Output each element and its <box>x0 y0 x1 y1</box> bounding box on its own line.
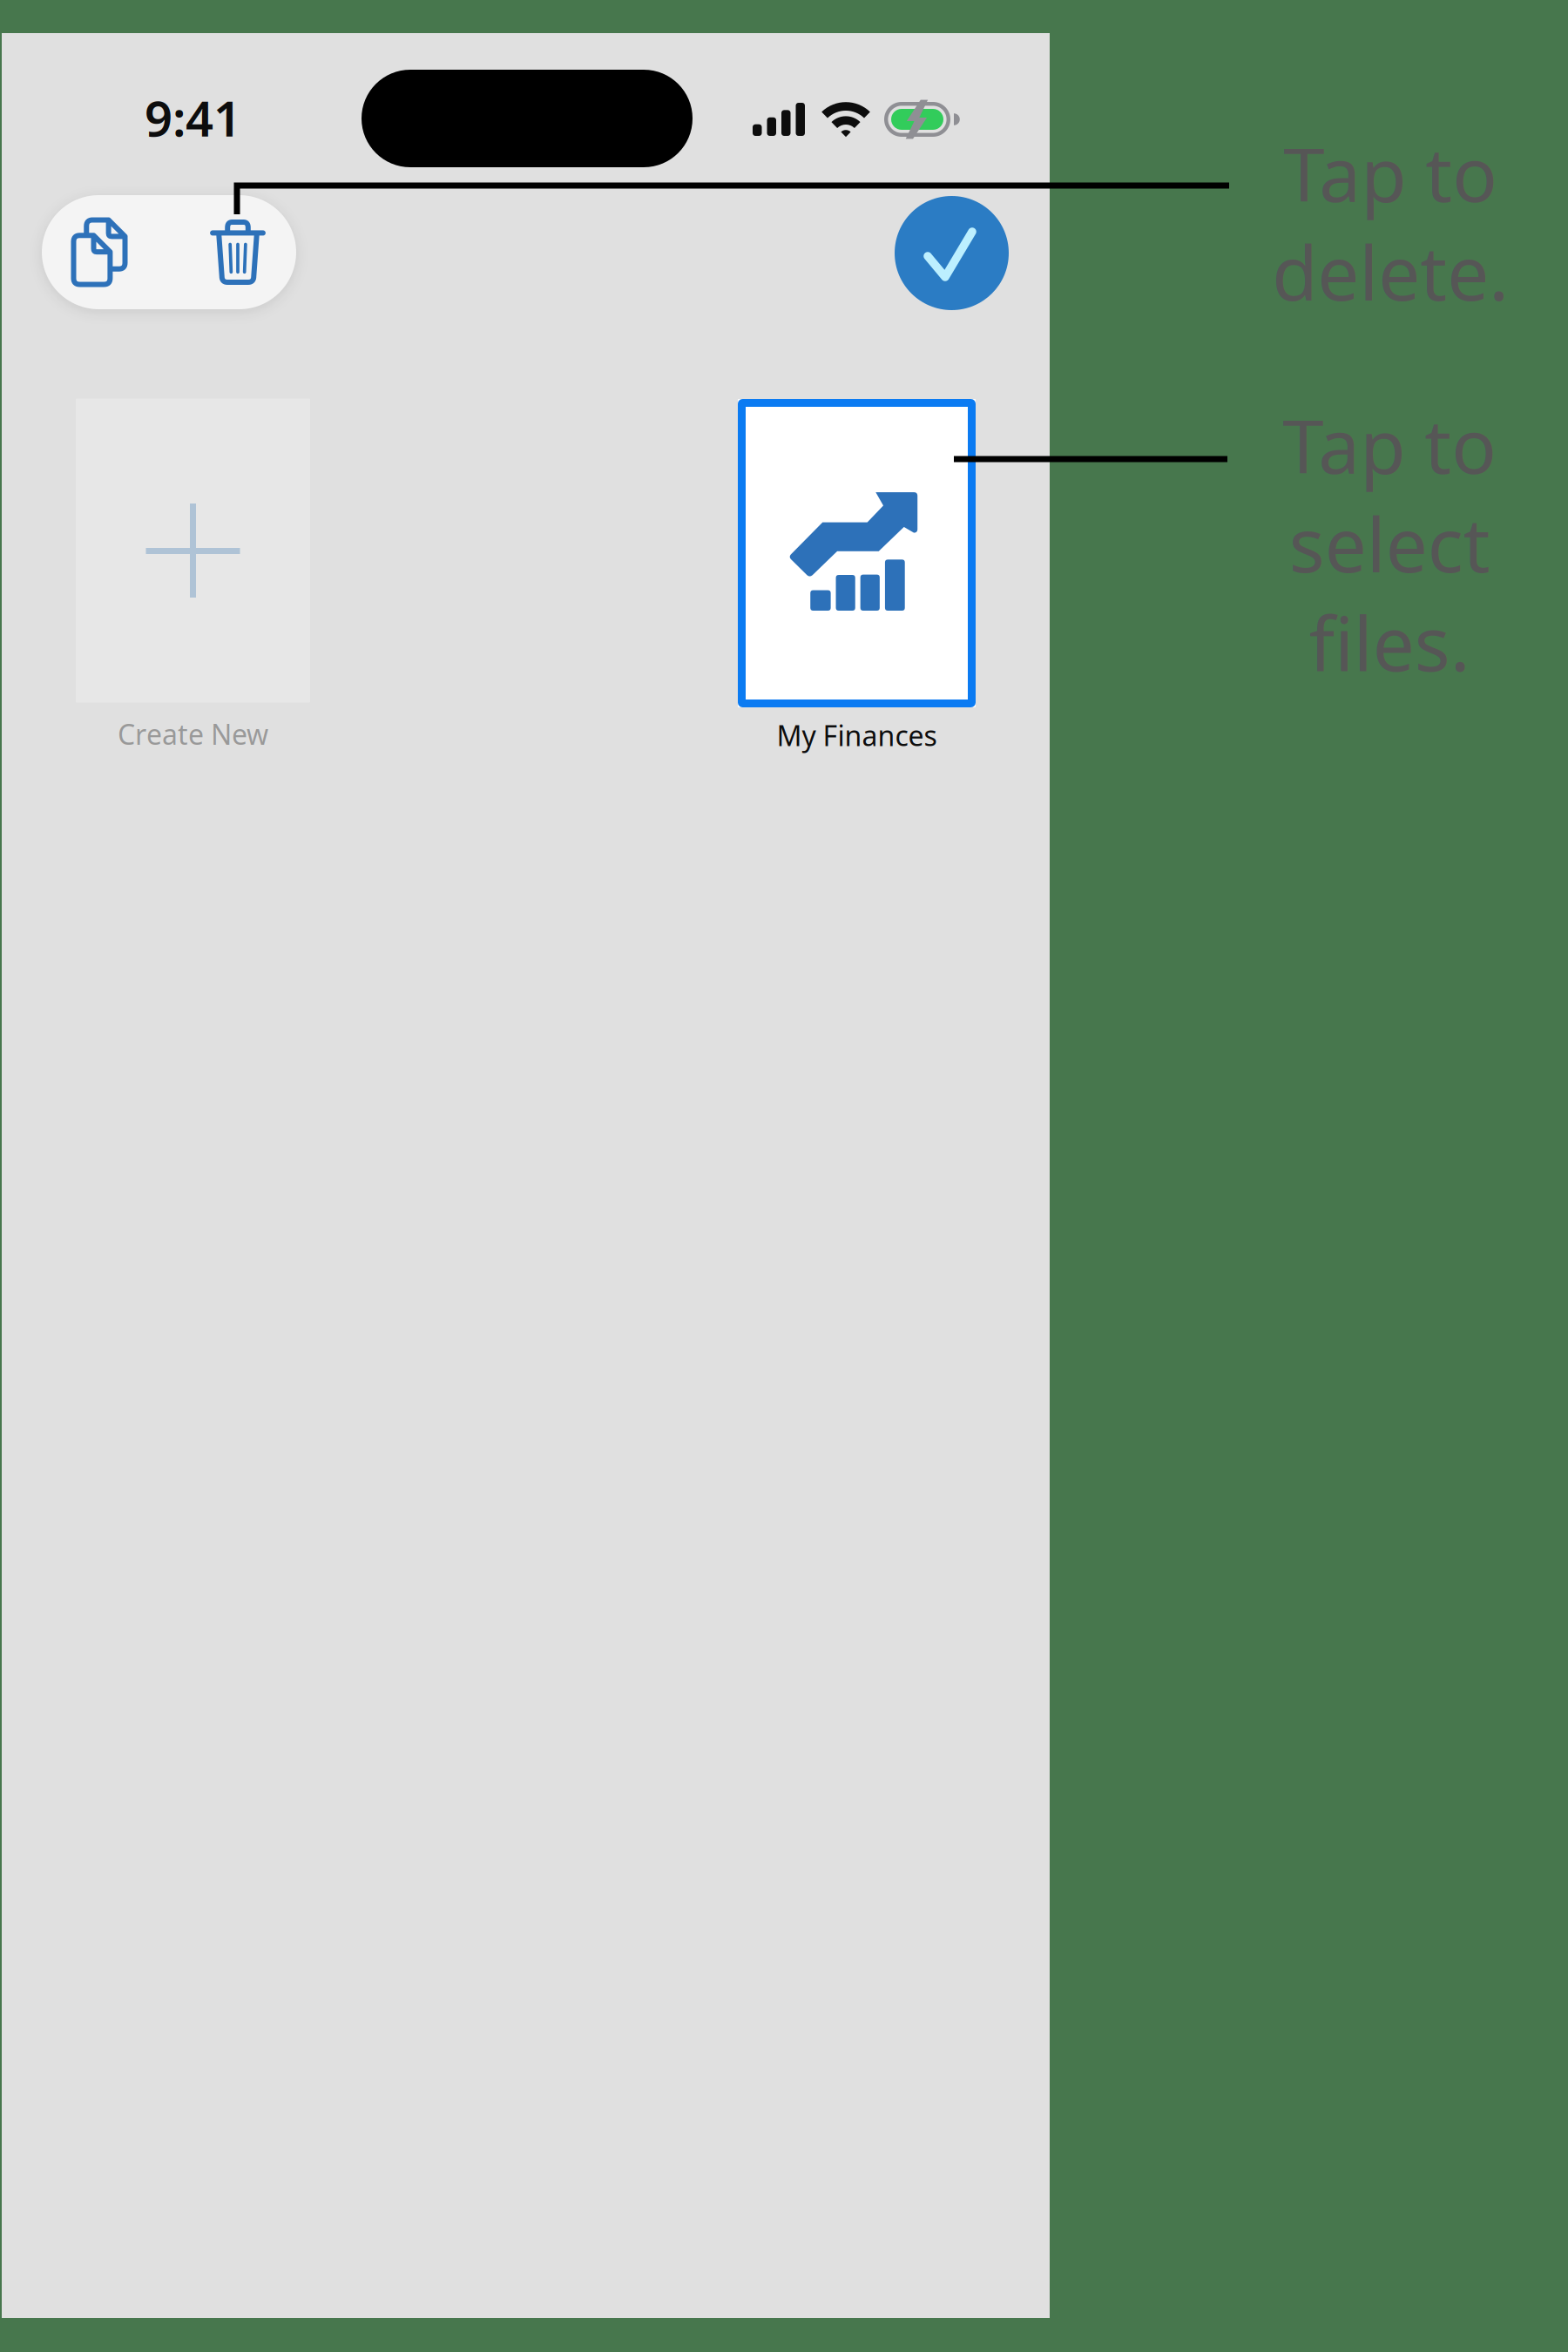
button[interactable]: My Finances <box>738 399 976 756</box>
button[interactable]: Done <box>895 196 1009 310</box>
staticText: My Finances <box>777 717 937 754</box>
button[interactable]: Duplicate <box>42 195 169 309</box>
staticText: Create New <box>118 715 268 752</box>
button[interactable]: Create New <box>76 399 310 755</box>
staticText: Tap to select files. <box>1282 395 1497 692</box>
staticText: Tap to delete. <box>1272 124 1509 321</box>
staticText: 9:41 <box>145 85 241 150</box>
button[interactable]: Delete <box>169 195 296 309</box>
